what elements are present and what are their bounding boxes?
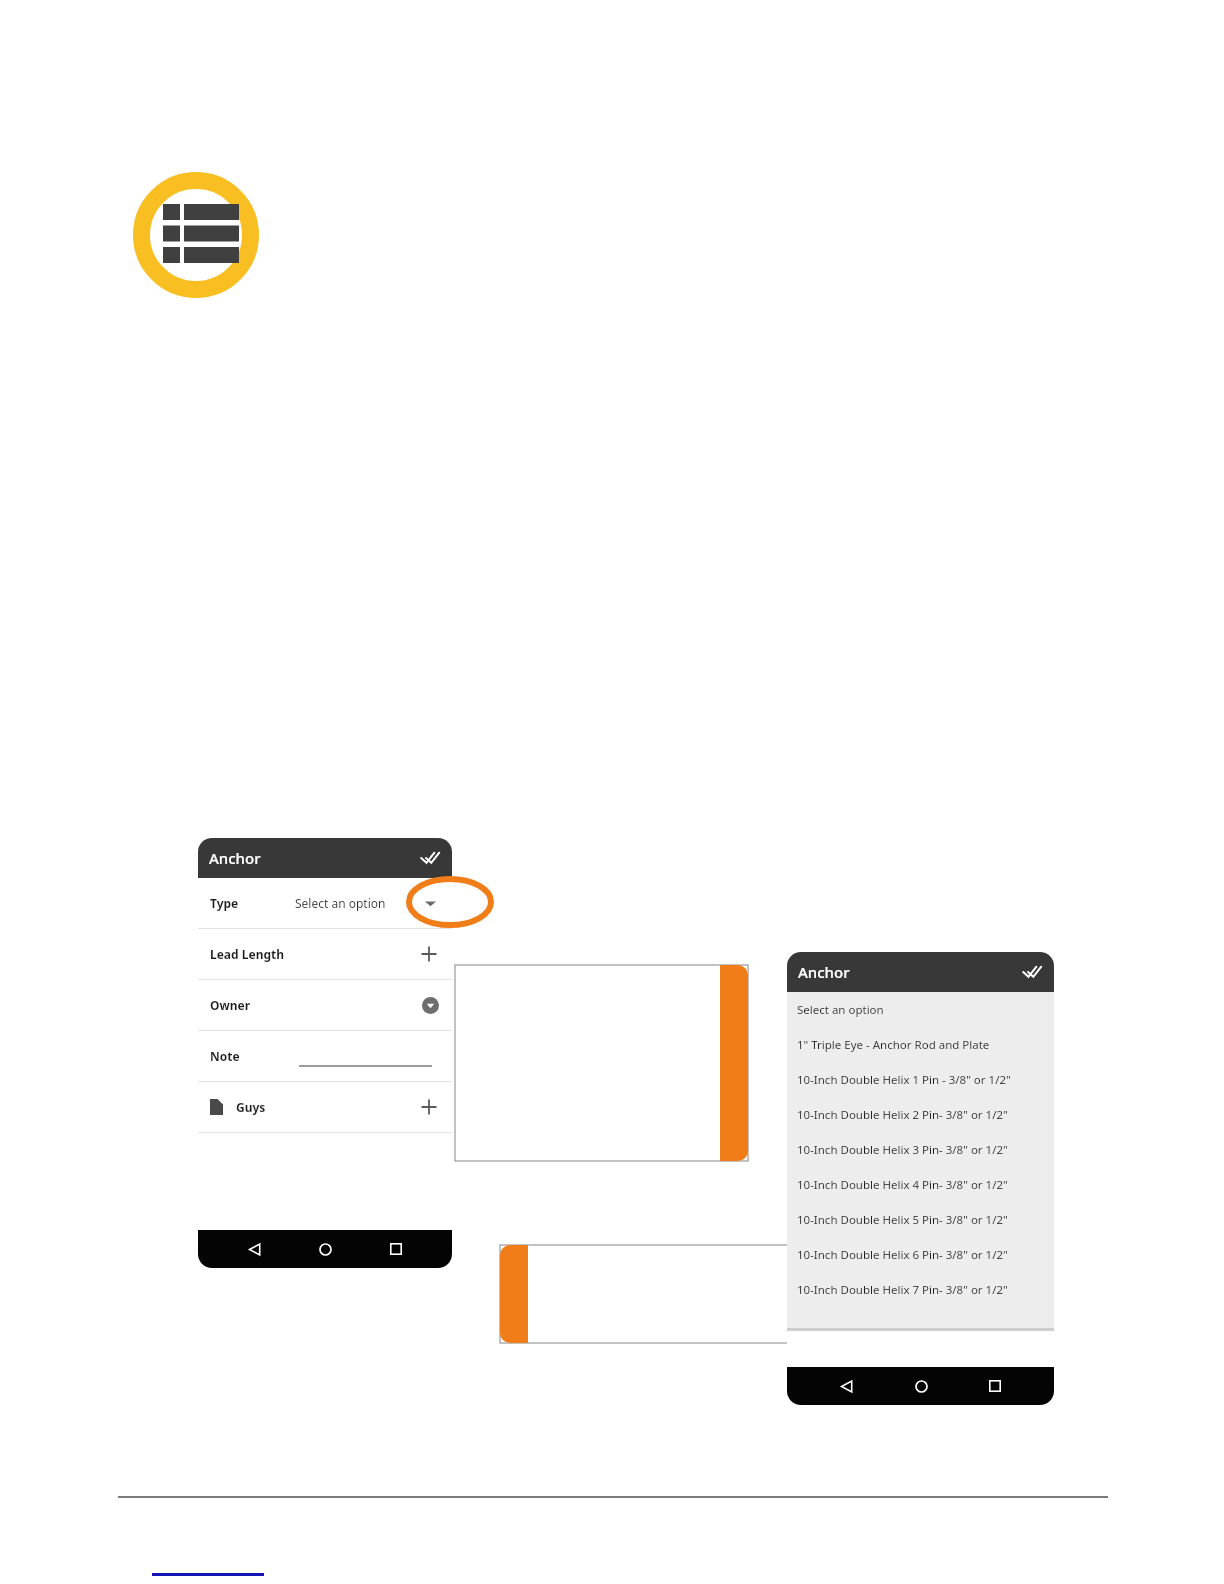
- staticText: 10-Inch Double Helix 5 Pin- 3/8" or 1/2"…: [797, 1212, 1048, 1228]
- button[interactable]: Save: [1021, 961, 1043, 983]
- staticText: 10-Inch Double Helix 7 Pin- 3/8" or 1/2"…: [797, 1282, 1048, 1298]
- button[interactable]: 10-Inch Double Helix 1 Pin - 3/8" or 1/2…: [787, 1062, 1054, 1097]
- staticText: Select an option: [797, 1002, 884, 1018]
- staticText: Lead Length: [210, 946, 285, 962]
- button[interactable]: Home: [906, 1371, 936, 1401]
- button[interactable]: List logo: [133, 172, 259, 298]
- button[interactable]: [299, 1045, 432, 1067]
- staticText: Anchor: [209, 848, 261, 868]
- button[interactable]: Anchor: [787, 952, 1054, 992]
- button[interactable]: Back: [831, 1371, 861, 1401]
- staticText: 1" Triple Eye - Anchor Rod and Plate: [797, 1037, 990, 1053]
- staticText: 10-Inch Double Helix 6 Pin- 3/8" or 1/2"…: [797, 1247, 1048, 1263]
- button[interactable]: 10-Inch Double Helix 2 Pin- 3/8" or 1/2"…: [787, 1097, 1054, 1132]
- button[interactable]: 1" Triple Eye - Anchor Rod and Plate: [787, 1027, 1054, 1062]
- staticText: Owner: [210, 997, 251, 1013]
- staticText: 10-Inch Double Helix 2 Pin- 3/8" or 1/2"…: [797, 1107, 1048, 1123]
- button[interactable]: Recent apps: [381, 1234, 411, 1264]
- staticText: Type: [210, 895, 239, 911]
- staticText: 10-Inch Double Helix 4 Pin- 3/8" or 1/2"…: [797, 1177, 1048, 1193]
- button[interactable]: Back: [239, 1234, 269, 1264]
- button[interactable]: Add guy: [418, 1096, 440, 1118]
- button[interactable]: Lead Length: [198, 929, 452, 979]
- button[interactable]: Owner: [198, 980, 452, 1030]
- button[interactable]: Save: [419, 847, 441, 869]
- staticText: 10-Inch Double Helix 1 Pin - 3/8" or 1/2…: [797, 1072, 1048, 1088]
- button[interactable]: Guys: [198, 1082, 452, 1132]
- button[interactable]: Type: [198, 878, 452, 928]
- button[interactable]: 10-Inch Double Helix 4 Pin- 3/8" or 1/2"…: [787, 1167, 1054, 1202]
- button[interactable]: Select owner: [420, 995, 440, 1015]
- staticText: Anchor: [798, 962, 850, 982]
- button[interactable]: Note: [198, 1031, 452, 1081]
- staticText: Select an option: [295, 895, 386, 911]
- button[interactable]: Anchor: [198, 838, 452, 878]
- button[interactable]: Recent apps: [980, 1371, 1010, 1401]
- button[interactable]: 10-Inch Double Helix 3 Pin- 3/8" or 1/2"…: [787, 1132, 1054, 1167]
- button[interactable]: Home: [310, 1234, 340, 1264]
- button[interactable]: 10-Inch Double Helix 6 Pin- 3/8" or 1/2"…: [787, 1237, 1054, 1272]
- staticText: Note: [210, 1048, 240, 1064]
- staticText: 10-Inch Double Helix 3 Pin- 3/8" or 1/2"…: [797, 1142, 1048, 1158]
- button[interactable]: Open dropdown: [420, 893, 440, 913]
- button[interactable]: Select an option: [787, 992, 1054, 1027]
- staticText: Guys: [236, 1099, 266, 1115]
- button[interactable]: Add lead length: [418, 943, 440, 965]
- button[interactable]: 10-Inch Double Helix 5 Pin- 3/8" or 1/2"…: [787, 1202, 1054, 1237]
- button[interactable]: 10-Inch Double Helix 7 Pin- 3/8" or 1/2"…: [787, 1272, 1054, 1307]
